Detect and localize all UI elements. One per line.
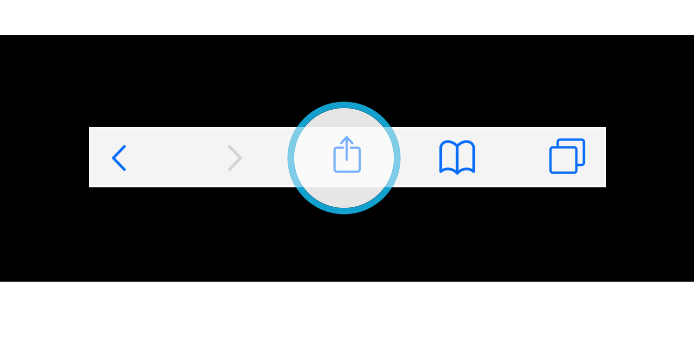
button[interactable]: Tabs [0,0,694,342]
button[interactable]: Bookmarks [0,0,694,342]
button[interactable]: Back [0,0,694,342]
button[interactable]: Forward [0,0,694,342]
button[interactable]: Share [0,0,694,342]
